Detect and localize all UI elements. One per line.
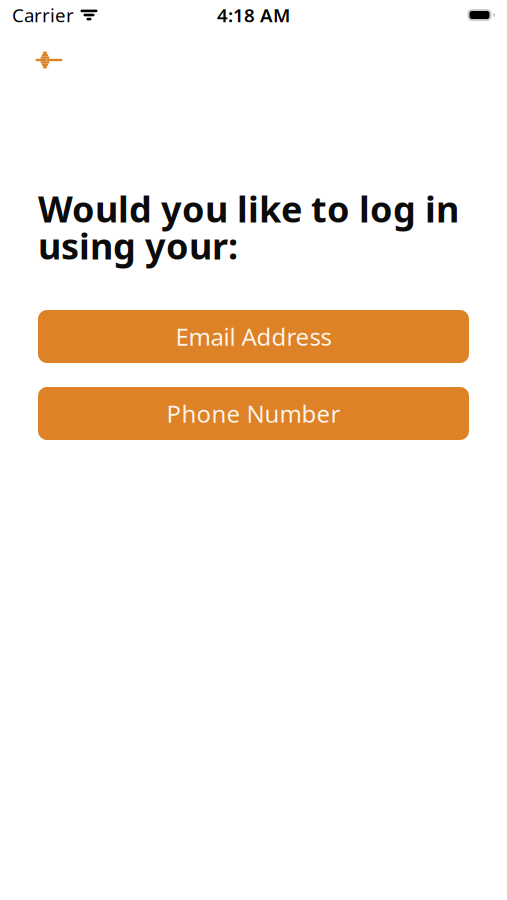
staticText: Would you like to log in: [38, 185, 459, 232]
staticText: Email Address: [175, 321, 331, 352]
staticText: 4:18 AM: [217, 3, 290, 27]
button[interactable]: Back: [27, 38, 71, 82]
button[interactable]: Phone Number: [38, 387, 469, 440]
staticText: Carrier: [12, 3, 74, 27]
button[interactable]: Email Address: [38, 310, 469, 363]
staticText: Phone Number: [166, 398, 340, 429]
staticText: using your:: [38, 222, 238, 269]
